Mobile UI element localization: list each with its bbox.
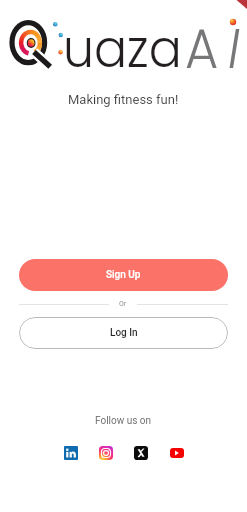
button[interactable]: YouTube [170, 448, 184, 458]
staticText: Log In [110, 327, 138, 339]
staticText: Making fitness fun! [68, 92, 179, 107]
staticText: Or [119, 300, 127, 308]
button[interactable]: Log In [19, 317, 228, 349]
button[interactable]: Sign Up [19, 259, 228, 291]
staticText: uaza [63, 11, 182, 86]
button[interactable]: LinkedIn [64, 446, 78, 460]
button[interactable]: X [134, 446, 148, 460]
staticText: A [185, 9, 219, 86]
staticText: Follow us on [95, 415, 152, 427]
button[interactable]: Instagram [99, 446, 113, 460]
staticText: I [228, 9, 240, 86]
staticText: Sign Up [106, 269, 141, 281]
